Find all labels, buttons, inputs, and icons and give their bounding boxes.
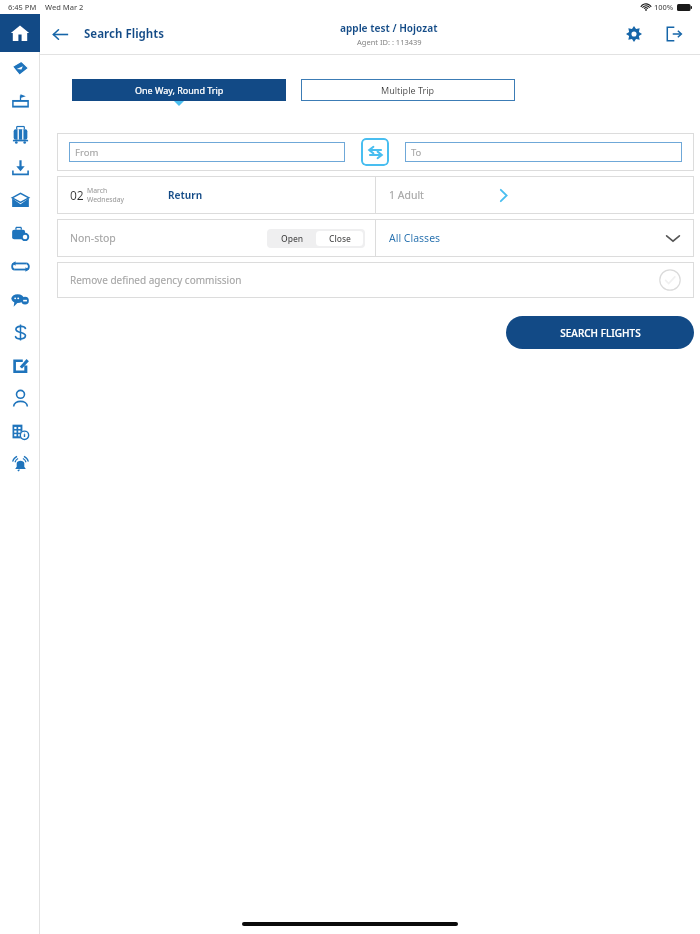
button[interactable]: Back: [40, 14, 80, 54]
button[interactable]: Flights: [0, 52, 40, 85]
button[interactable]: Baggage: [0, 118, 40, 151]
staticText: Remove defined agency commission: [70, 273, 242, 287]
button[interactable]: From: [69, 142, 345, 162]
button[interactable]: Support: [0, 283, 40, 316]
staticText: 1 Adult: [389, 188, 424, 202]
button[interactable]: Open: [269, 231, 316, 246]
button[interactable]: Settings: [614, 14, 654, 54]
staticText: All Classes: [389, 231, 441, 245]
staticText: March: [87, 186, 108, 195]
button[interactable]: apple test / Hojozat: [340, 21, 438, 47]
button[interactable]: Profile: [0, 382, 40, 415]
button[interactable]: Edit: [0, 349, 40, 382]
button[interactable]: Multiple Trip: [301, 79, 515, 101]
button[interactable]: Finance: [0, 316, 40, 349]
staticText: From: [75, 146, 99, 159]
button[interactable]: 02: [57, 176, 375, 214]
staticText: Wed Mar 2: [45, 2, 84, 12]
button[interactable]: Remove defined agency commission: [57, 262, 694, 298]
button[interactable]: Swap origin and destination: [361, 138, 389, 166]
button[interactable]: Reports: [0, 415, 40, 448]
staticText: Return: [168, 188, 203, 202]
button[interactable]: Search Flights: [84, 26, 165, 42]
staticText: Agent ID: : 113439: [357, 37, 422, 47]
staticText: Close: [329, 233, 351, 245]
staticText: SEARCH FLIGHTS: [560, 326, 641, 340]
button[interactable]: One Way, Round Trip: [72, 79, 286, 101]
staticText: Open: [281, 233, 304, 245]
staticText: 02: [70, 187, 84, 203]
staticText: Search Flights: [84, 26, 165, 42]
button[interactable]: Close: [316, 231, 363, 246]
button[interactable]: Download: [0, 151, 40, 184]
button[interactable]: 1 Adult: [376, 176, 694, 214]
button[interactable]: Logout: [654, 14, 694, 54]
button[interactable]: To: [405, 142, 682, 162]
button[interactable]: Mail: [0, 184, 40, 217]
button[interactable]: Home: [0, 14, 40, 52]
staticText: apple test / Hojozat: [340, 21, 438, 35]
button[interactable]: Exchange: [0, 250, 40, 283]
button[interactable]: SEARCH FLIGHTS: [506, 316, 694, 349]
button[interactable]: Tours: [0, 217, 40, 250]
staticText: Non-stop: [70, 231, 116, 245]
staticText: Multiple Trip: [381, 84, 435, 96]
button[interactable]: Hotel: [0, 85, 40, 118]
button[interactable]: Notifications: [0, 448, 40, 481]
staticText: One Way, Round Trip: [135, 84, 224, 96]
staticText: 6:45 PM: [8, 2, 37, 12]
staticText: To: [411, 146, 422, 159]
staticText: Wednesday: [87, 195, 124, 204]
staticText: 100%: [654, 2, 674, 12]
button[interactable]: All Classes: [376, 219, 694, 257]
